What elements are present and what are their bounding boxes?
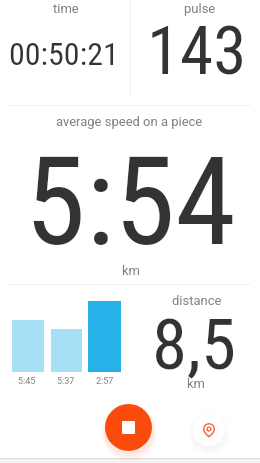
button[interactable]: Location [193, 414, 225, 446]
staticText: distance [172, 293, 222, 308]
staticText: pulse [184, 1, 216, 16]
staticText: 00:50:21 [9, 35, 119, 73]
staticText: 143 [147, 12, 247, 91]
staticText: km [122, 263, 140, 278]
button[interactable] [0, 0, 130, 104]
button[interactable] [131, 284, 260, 394]
staticText: 5:45 [18, 376, 36, 387]
staticText: 2:57 [96, 376, 114, 387]
staticText: 8,5 [152, 303, 237, 386]
button[interactable] [131, 0, 260, 104]
staticText: km [187, 376, 205, 391]
staticText: 5:54 [25, 130, 236, 274]
button[interactable] [0, 284, 130, 394]
staticText: 5:37 [57, 376, 75, 387]
staticText: time [53, 1, 79, 16]
button[interactable]: Stop [105, 404, 152, 451]
button[interactable] [0, 105, 260, 283]
staticText: average speed on a piece [56, 114, 203, 129]
